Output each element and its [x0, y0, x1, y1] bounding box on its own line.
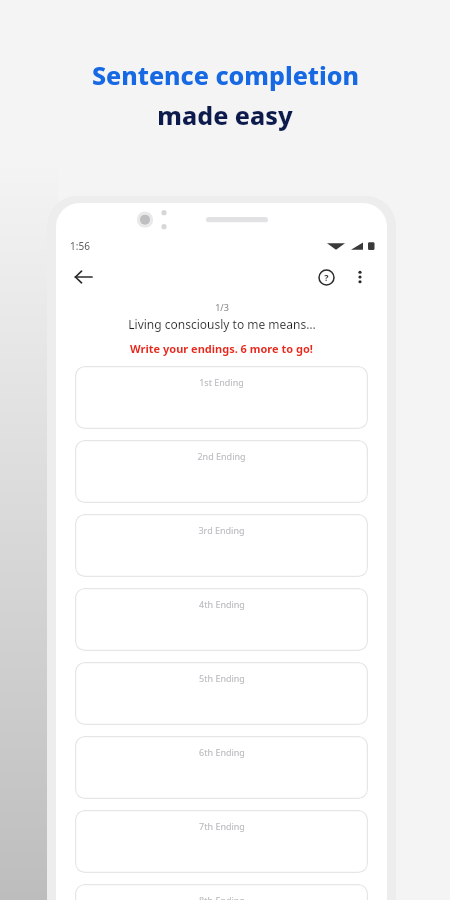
staticText: 7th Ending — [199, 820, 245, 832]
button[interactable]: Help — [309, 260, 343, 294]
staticText: 6th Ending — [199, 746, 245, 758]
button[interactable]: More options — [343, 260, 377, 294]
button[interactable]: 2nd Ending — [75, 440, 368, 503]
staticText: 1st Ending — [199, 376, 244, 388]
staticText: 4th Ending — [199, 598, 245, 610]
button[interactable]: Back — [66, 260, 100, 294]
button[interactable]: 3rd Ending — [75, 514, 368, 577]
staticText: 1:56 — [70, 239, 90, 253]
staticText: 5th Ending — [199, 672, 245, 684]
staticText: 8th Ending — [199, 894, 245, 900]
button[interactable]: 5th Ending — [75, 662, 368, 725]
button[interactable]: 8th Ending — [75, 884, 368, 900]
button[interactable]: 1st Ending — [75, 366, 368, 429]
staticText: Write your endings. 6 more to go! — [130, 341, 313, 356]
button[interactable]: 7th Ending — [75, 810, 368, 873]
staticText: Sentence completion — [92, 58, 359, 92]
button[interactable]: 4th Ending — [75, 588, 368, 651]
button[interactable]: 6th Ending — [75, 736, 368, 799]
staticText: made easy — [157, 98, 293, 132]
staticText: 1/3 — [215, 301, 229, 313]
staticText: Living consciously to me means… — [128, 316, 316, 332]
staticText: 2nd Ending — [197, 450, 246, 462]
staticText: 3rd Ending — [198, 524, 245, 536]
staticText: ? — [324, 271, 329, 283]
